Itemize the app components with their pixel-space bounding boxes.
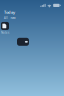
button[interactable]: Notes [1,22,9,35]
button[interactable]: New [10,16,15,20]
staticText: Notes [1,31,9,35]
staticText: Today [4,10,15,15]
button[interactable]: Dynamic Island activity [17,38,29,46]
staticText: All [4,16,8,20]
button[interactable]: All [4,16,8,20]
staticText: New [10,16,15,20]
